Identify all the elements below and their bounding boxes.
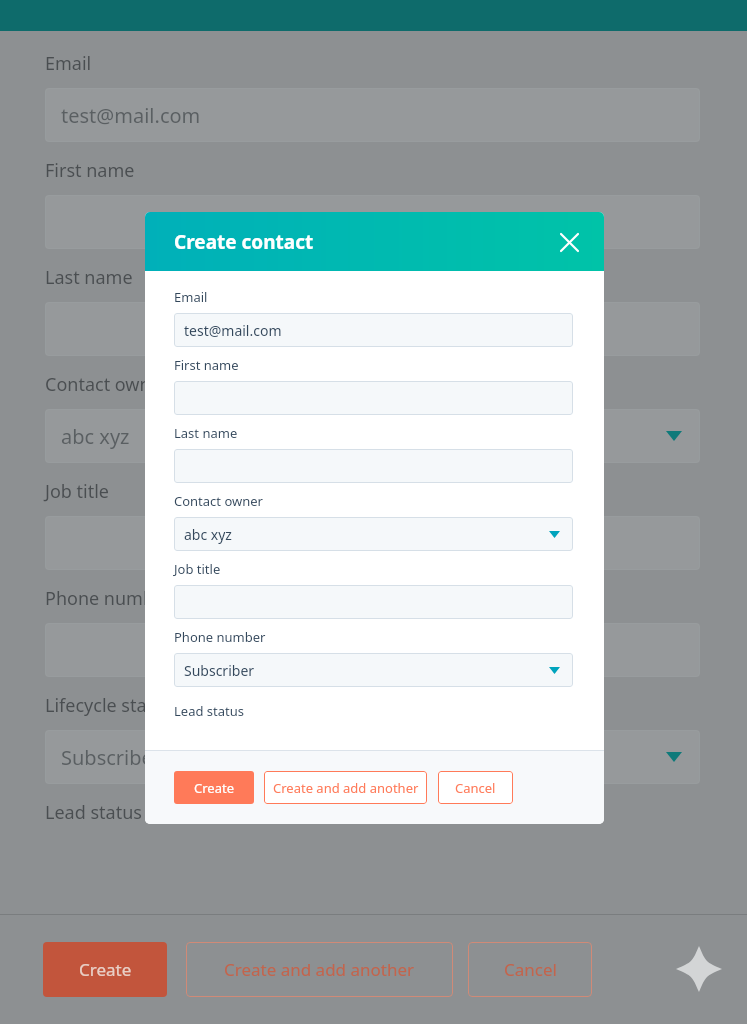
staticText: Subscriber	[184, 661, 255, 680]
staticText: test@mail.com	[61, 102, 201, 129]
staticText: Lead status	[45, 800, 142, 825]
button[interactable]	[45, 195, 700, 249]
button[interactable]	[45, 516, 700, 570]
staticText: Lifecycle stage	[45, 693, 168, 718]
button[interactable]: Assistant	[671, 941, 727, 997]
button[interactable]: Create and add another	[264, 771, 427, 804]
staticText: Job title	[174, 560, 221, 578]
staticText: Last name	[45, 265, 133, 290]
staticText: Subscriber	[61, 744, 162, 771]
button[interactable]: abc xyz	[45, 409, 700, 463]
button[interactable]: Subscriber	[174, 653, 573, 687]
staticText: Create contact	[174, 229, 314, 255]
button[interactable]: Create and add another	[186, 942, 453, 997]
staticText: Create	[194, 779, 234, 797]
button[interactable]	[45, 302, 700, 356]
staticText: Phone number	[45, 586, 172, 611]
button[interactable]: Create	[43, 942, 167, 997]
staticText: Email	[45, 51, 92, 76]
button[interactable]	[174, 585, 573, 619]
staticText: Contact owner	[45, 372, 169, 397]
button[interactable]: Close	[554, 227, 584, 257]
button[interactable]: test@mail.com	[45, 88, 700, 142]
staticText: First name	[174, 356, 239, 374]
staticText: abc xyz	[184, 525, 232, 544]
staticText: Create and add another	[273, 779, 419, 797]
button[interactable]: abc xyz	[174, 517, 573, 551]
staticText: Create	[79, 958, 132, 981]
staticText: Lead status	[174, 702, 244, 720]
staticText: First name	[45, 158, 135, 183]
button[interactable]: Create	[174, 771, 254, 804]
button[interactable]: Cancel	[438, 771, 513, 804]
button[interactable]	[174, 449, 573, 483]
staticText: Cancel	[455, 779, 496, 797]
button[interactable]	[45, 623, 700, 677]
staticText: Create and add another	[224, 958, 415, 981]
button[interactable]: Cancel	[468, 942, 592, 997]
staticText: abc xyz	[61, 423, 130, 450]
staticText: Last name	[174, 424, 238, 442]
staticText: Email	[174, 288, 208, 306]
button[interactable]: Subscriber	[45, 730, 700, 784]
button[interactable]	[174, 381, 573, 415]
staticText: test@mail.com	[184, 321, 282, 340]
staticText: Job title	[45, 479, 109, 504]
staticText: Cancel	[504, 958, 557, 981]
button[interactable]: test@mail.com	[174, 313, 573, 347]
staticText: Phone number	[174, 628, 266, 646]
staticText: Contact owner	[174, 492, 263, 510]
